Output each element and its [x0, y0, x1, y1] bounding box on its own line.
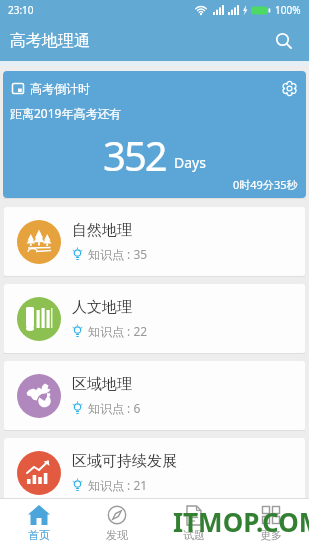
staticText: 首页 [28, 528, 50, 542]
button[interactable]: 首页 [0, 499, 78, 550]
button[interactable]: 区域可持续发展 [4, 438, 305, 507]
staticText: 人文地理 [72, 298, 132, 317]
staticText: 0时49分35秒 [233, 177, 298, 192]
staticText: 区域可持续发展 [72, 452, 177, 471]
button[interactable] [280, 79, 298, 97]
staticText: ITMOP.COM [173, 504, 309, 539]
button[interactable] [269, 26, 299, 56]
button[interactable]: 自然地理 [4, 207, 305, 276]
button[interactable]: 区域地理 [4, 361, 305, 430]
staticText: 高考地理通 [10, 31, 90, 51]
staticText: 352 [103, 128, 166, 182]
staticText: 知识点 : 35 [88, 246, 148, 262]
staticText: 距离2019年高考还有 [10, 105, 122, 121]
staticText: 知识点 : 22 [88, 323, 148, 339]
staticText: Days [174, 153, 206, 172]
button[interactable]: 人文地理 [4, 284, 305, 353]
staticText: 知识点 : 21 [88, 477, 148, 493]
staticText: 自然地理 [72, 221, 132, 240]
button[interactable]: 发现 [78, 499, 155, 550]
staticText: 高考倒计时 [30, 81, 90, 96]
staticText: 23:10 [8, 3, 34, 17]
staticText: 区域地理 [72, 375, 132, 394]
button[interactable]: 更多 [232, 499, 309, 550]
staticText: 发现 [106, 528, 128, 542]
staticText: 试题 [183, 528, 205, 542]
staticText: 更多 [260, 528, 282, 542]
staticText: 100% [275, 3, 301, 17]
staticText: 知识点 : 6 [88, 400, 141, 416]
button[interactable]: 试题 [155, 499, 232, 550]
button[interactable]: 高考倒计时 [3, 71, 306, 198]
